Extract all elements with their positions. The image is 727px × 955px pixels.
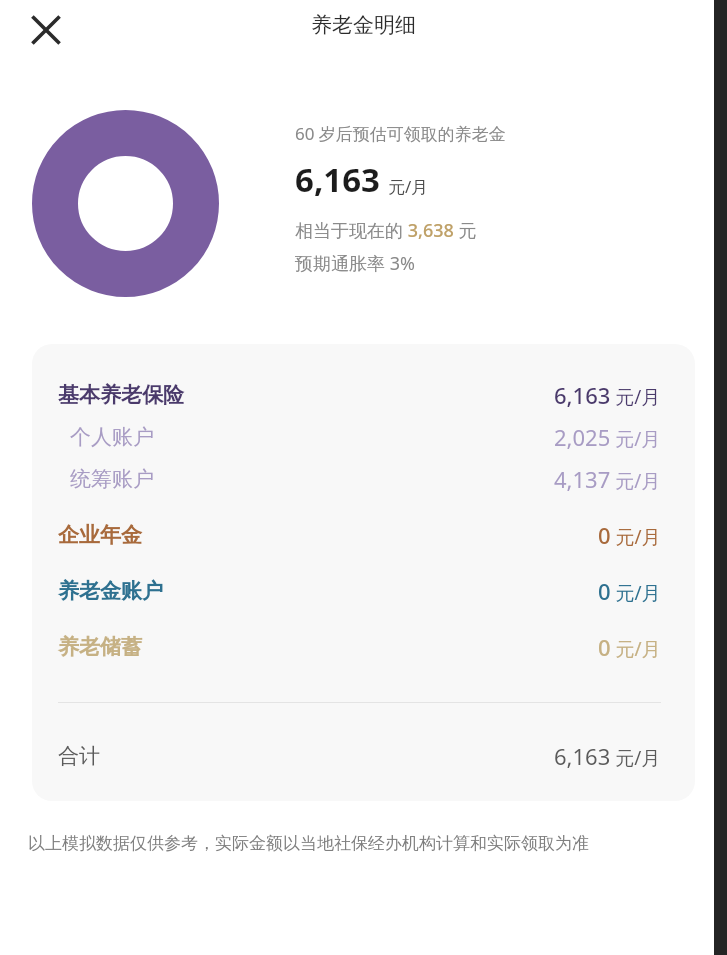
staticText: 企业年金 (58, 522, 142, 548)
button[interactable]: 基本养老保险 (58, 380, 661, 410)
staticText: 相当于现在的 3,638 元 (295, 218, 477, 243)
staticText: 0 元/月 (598, 520, 661, 550)
staticText: 个人账户 (70, 424, 154, 450)
staticText: 养老金账户 (58, 578, 163, 604)
button[interactable]: 个人账户 (58, 422, 661, 452)
staticText: 2,025 元/月 (554, 422, 661, 452)
button[interactable]: 养老储蓄 (58, 632, 661, 662)
button[interactable]: 合计 (58, 741, 661, 771)
staticText: 养老金明细 (311, 12, 416, 38)
staticText: 以上模拟数据仅供参考，实际金额以当地社保经办机构计算和实际领取为准 (28, 833, 589, 854)
staticText: 0 元/月 (598, 576, 661, 606)
staticText: 0 元/月 (598, 632, 661, 662)
staticText: 基本养老保险 (58, 382, 184, 408)
button[interactable]: 企业年金 (58, 520, 661, 550)
staticText: 预期通胀率 3% (295, 251, 415, 276)
button[interactable]: 统筹账户 (58, 464, 661, 494)
staticText: 4,137 元/月 (554, 464, 661, 494)
button[interactable]: Close (22, 6, 70, 54)
staticText: 60 岁后预估可领取的养老金 (295, 122, 506, 145)
staticText: 6,163 元/月 (554, 741, 661, 771)
staticText: 元/月 (388, 175, 429, 198)
staticText: 合计 (58, 743, 100, 769)
button[interactable]: 养老金账户 (58, 576, 661, 606)
staticText: 养老储蓄 (58, 634, 142, 660)
staticText: 统筹账户 (70, 466, 154, 492)
staticText: 6,163 (295, 157, 380, 202)
staticText: 6,163 元/月 (554, 380, 661, 410)
